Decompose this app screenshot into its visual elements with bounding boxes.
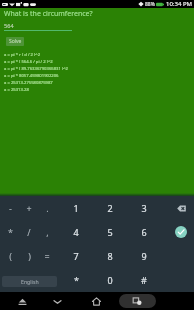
button[interactable]: English xyxy=(2,276,57,287)
staticText: English xyxy=(21,278,39,285)
button[interactable]: # xyxy=(135,268,153,292)
button[interactable]: ( xyxy=(1,244,19,268)
staticText: 3 xyxy=(141,202,147,214)
staticText: 4 xyxy=(73,226,79,238)
staticText: , xyxy=(46,226,49,238)
button[interactable]: Back xyxy=(46,294,68,308)
button[interactable]: Hide keyboard xyxy=(11,294,33,308)
button[interactable]: 6 xyxy=(135,220,153,244)
button[interactable]: , xyxy=(38,220,56,244)
staticText: 0 xyxy=(107,274,113,286)
staticText: * xyxy=(8,226,13,238)
button[interactable]: 7 xyxy=(67,244,85,268)
button[interactable]: 5 xyxy=(101,220,119,244)
button[interactable]: 1 xyxy=(67,196,85,220)
staticText: a = 25313.275580875987 xyxy=(4,80,53,86)
button[interactable]: - xyxy=(1,196,19,220)
button[interactable]: 4 xyxy=(67,220,85,244)
staticText: a = pi * r ( d / 2 )^2 xyxy=(4,52,41,58)
staticText: = xyxy=(44,250,50,262)
button[interactable]: 0 xyxy=(101,268,119,292)
button[interactable]: * xyxy=(67,268,85,292)
staticText: 6 xyxy=(141,226,147,238)
staticText: ( xyxy=(9,250,12,262)
button[interactable]: Backspace xyxy=(172,196,190,220)
staticText: * xyxy=(74,274,79,286)
button[interactable]: / xyxy=(20,220,38,244)
button[interactable]: Home xyxy=(85,294,107,308)
button[interactable]: 9 xyxy=(135,244,153,268)
staticText: - xyxy=(9,202,12,214)
staticText: 10:34 PM xyxy=(166,0,192,8)
staticText: 9 xyxy=(141,250,147,262)
staticText: a = pi * ( 89.76336790365831 )^2 xyxy=(4,66,68,72)
staticText: a = pi * ( 564.6 / pi / 2 )^2 xyxy=(4,59,53,65)
button[interactable]: 8 xyxy=(101,244,119,268)
staticText: Solve xyxy=(9,38,22,45)
staticText: a = pi * 8057.459801902206 xyxy=(4,73,59,79)
button[interactable]: + xyxy=(20,196,38,220)
button[interactable]: * xyxy=(1,220,19,244)
staticText: 8 xyxy=(107,250,113,262)
staticText: . xyxy=(46,202,49,214)
staticText: 564 xyxy=(4,22,14,29)
button[interactable]: 2 xyxy=(101,196,119,220)
staticText: / xyxy=(27,226,31,238)
staticText: What is the circumference? xyxy=(4,9,93,19)
button[interactable]: Solve xyxy=(6,37,24,46)
button[interactable]: . xyxy=(38,196,56,220)
staticText: + xyxy=(26,202,32,214)
staticText: 1 xyxy=(73,202,79,214)
staticText: 7 xyxy=(73,250,79,262)
button[interactable]: = xyxy=(38,244,56,268)
staticText: ) xyxy=(28,250,31,262)
staticText: 88% xyxy=(145,1,155,8)
button[interactable]: 3 xyxy=(135,196,153,220)
staticText: # xyxy=(141,274,147,286)
button[interactable]: Enter xyxy=(175,226,187,238)
button[interactable]: Recent apps xyxy=(126,294,148,308)
button[interactable]: ) xyxy=(20,244,38,268)
staticText: 2 xyxy=(107,202,113,214)
staticText: 5 xyxy=(107,226,113,238)
staticText: a = 25313.28 xyxy=(4,87,29,93)
